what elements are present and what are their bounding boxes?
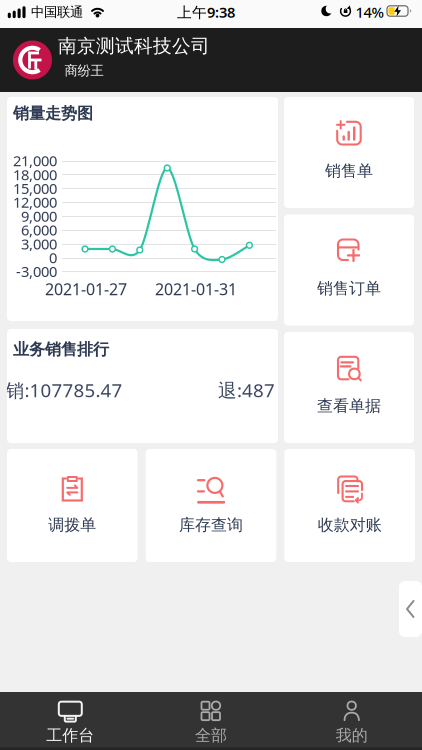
button[interactable]: 销售订单 — [284, 214, 414, 325]
staticText: 0 — [49, 248, 57, 267]
staticText: 销售单 — [325, 161, 373, 181]
staticText: 21,000 — [13, 151, 57, 170]
staticText: 18,000 — [13, 165, 57, 184]
staticText: 查看单据 — [317, 396, 381, 416]
staticText: 15,000 — [13, 179, 57, 198]
staticText: 销量走势图 — [13, 104, 93, 123]
staticText: 商纷王 — [64, 62, 103, 79]
staticText: 2021-01-27 — [45, 278, 127, 300]
staticText: -3,000 — [16, 262, 57, 281]
button[interactable]: 我的 — [282, 694, 422, 750]
staticText: 14% — [355, 2, 383, 22]
staticText: 收款对账 — [318, 515, 382, 535]
button[interactable]: 工作台 — [0, 694, 140, 750]
button[interactable]: 查看单据 — [284, 332, 414, 443]
staticText: 全部 — [195, 726, 227, 745]
button[interactable]: 销售单 — [284, 97, 414, 208]
staticText: 9,000 — [21, 206, 57, 226]
staticText: 2021-01-31 — [155, 278, 237, 300]
staticText: 我的 — [336, 726, 368, 745]
button[interactable]: 调拨单 — [7, 449, 138, 562]
button[interactable]: 收款对账 — [284, 449, 415, 562]
staticText: 3,000 — [21, 234, 57, 253]
button[interactable]: 库存查询 — [146, 449, 276, 562]
staticText: 中国联通 — [31, 4, 83, 20]
staticText: 6,000 — [21, 220, 57, 240]
button[interactable]: 全部 — [141, 694, 281, 750]
staticText: 12,000 — [13, 192, 57, 212]
button[interactable]: 收起 — [399, 581, 422, 637]
staticText: 南京测试科技公司 — [58, 34, 210, 57]
staticText: 退:487 — [218, 378, 275, 402]
staticText: 销:107785.47 — [5, 378, 122, 402]
staticText: 销售订单 — [317, 279, 381, 298]
staticText: 上午9:38 — [177, 2, 235, 22]
staticText: 工作台 — [46, 726, 94, 745]
staticText: 库存查询 — [179, 515, 243, 535]
staticText: 业务销售排行 — [13, 340, 109, 359]
staticText: 调拨单 — [48, 515, 96, 535]
